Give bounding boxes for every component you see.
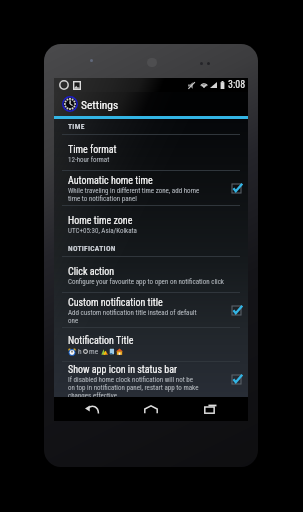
staticText: Time format [68,144,117,156]
button[interactable]: Time format [54,135,248,171]
staticText: Home time zone [68,215,133,227]
staticText: NOTIFICATION [68,244,116,253]
staticText: Show app icon in status bar [68,364,178,376]
button[interactable]: Home [130,397,172,421]
staticText: Settings [81,98,119,111]
button[interactable]: Home time zone [54,206,248,241]
button[interactable]: Automatic home time [54,171,248,206]
staticText: Notification Title [68,335,134,347]
staticText: h [78,347,82,356]
button[interactable]: Recent apps [189,397,231,421]
button[interactable]: Notification Title [54,328,248,362]
staticText: Add custom notification title instead of… [68,309,200,325]
staticText: Configure your favourite app to open on … [68,278,225,286]
staticText: UTC+05:30, Asia/Kolkata [68,227,137,235]
button[interactable]: Back [71,397,113,421]
staticText: Automatic home time [68,175,153,187]
staticText: 3:08 [228,79,246,91]
staticText: me [89,347,99,356]
button[interactable]: Show app icon in status bar [54,362,248,397]
staticText: TIME [68,122,85,131]
staticText: If disabled home clock notification will… [68,376,200,397]
staticText: 12-hour format [68,156,110,164]
staticText: Custom notification title [68,297,163,309]
button[interactable]: Click action [54,257,248,293]
staticText: Click action [68,266,115,278]
button[interactable]: Custom notification title [54,293,248,328]
staticText: While traveling in different time zone, … [68,187,200,203]
